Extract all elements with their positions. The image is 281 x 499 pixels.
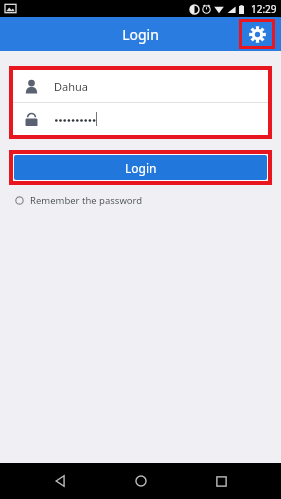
button[interactable]: Login — [14, 155, 267, 180]
staticText: Login — [125, 160, 157, 176]
staticText: Login — [122, 25, 159, 44]
staticText: Dahua — [54, 79, 88, 94]
button[interactable]: Back — [40, 463, 80, 499]
button[interactable]: Dahua — [13, 70, 268, 102]
staticText: 12:29 — [251, 2, 277, 16]
button[interactable]: Remember the password — [13, 191, 145, 210]
button[interactable]: Settings — [239, 19, 275, 49]
button[interactable] — [13, 103, 268, 135]
button[interactable]: Home — [121, 463, 161, 499]
button[interactable]: Recent apps — [201, 463, 241, 499]
staticText: Remember the password — [30, 194, 143, 207]
